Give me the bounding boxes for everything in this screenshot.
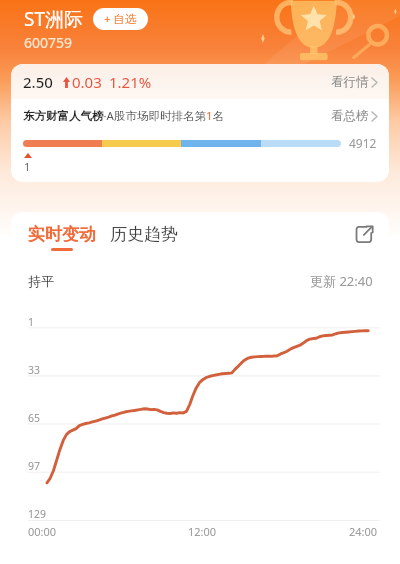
staticText: 更新 22:40 — [310, 272, 373, 290]
staticText: 东方财富人气榜·A股市场即时排名第1名 — [23, 108, 225, 124]
staticText: 持平 — [28, 273, 54, 289]
staticText: 12:00 — [188, 524, 217, 539]
button[interactable]: 实时变动 — [28, 224, 96, 251]
staticText: + 自选 — [104, 11, 137, 27]
staticText: ST洲际 — [24, 6, 83, 32]
staticText: 0.03 — [72, 72, 102, 92]
staticText: 实时变动 — [28, 224, 96, 245]
staticText: 看总榜 — [331, 108, 369, 124]
staticText: 历史趋势 — [110, 224, 178, 245]
staticText: 129 — [28, 507, 47, 521]
button[interactable]: 2.50 — [11, 64, 389, 99]
button[interactable]: 看总榜 — [331, 108, 377, 124]
staticText: 97 — [28, 459, 41, 473]
staticText: 00:00 — [28, 524, 57, 539]
button[interactable]: + 自选 — [93, 8, 148, 30]
staticText: 看行情 — [331, 74, 369, 90]
button[interactable]: 看行情 — [331, 74, 377, 90]
staticText: 33 — [28, 363, 41, 377]
button[interactable]: 东方财富人气榜·A股市场即时排名第1名 — [11, 99, 389, 125]
staticText: 1.21% — [109, 72, 152, 92]
button[interactable]: 历史趋势 — [110, 224, 178, 251]
staticText: 2.50 — [23, 72, 53, 92]
staticText: 1 — [24, 159, 31, 174]
staticText: 1 — [28, 315, 35, 329]
staticText: 600759 — [24, 33, 73, 52]
staticText: 65 — [28, 411, 41, 425]
button[interactable]: Share — [354, 224, 375, 245]
staticText: 4912 — [349, 135, 377, 151]
staticText: 24:00 — [349, 524, 378, 539]
